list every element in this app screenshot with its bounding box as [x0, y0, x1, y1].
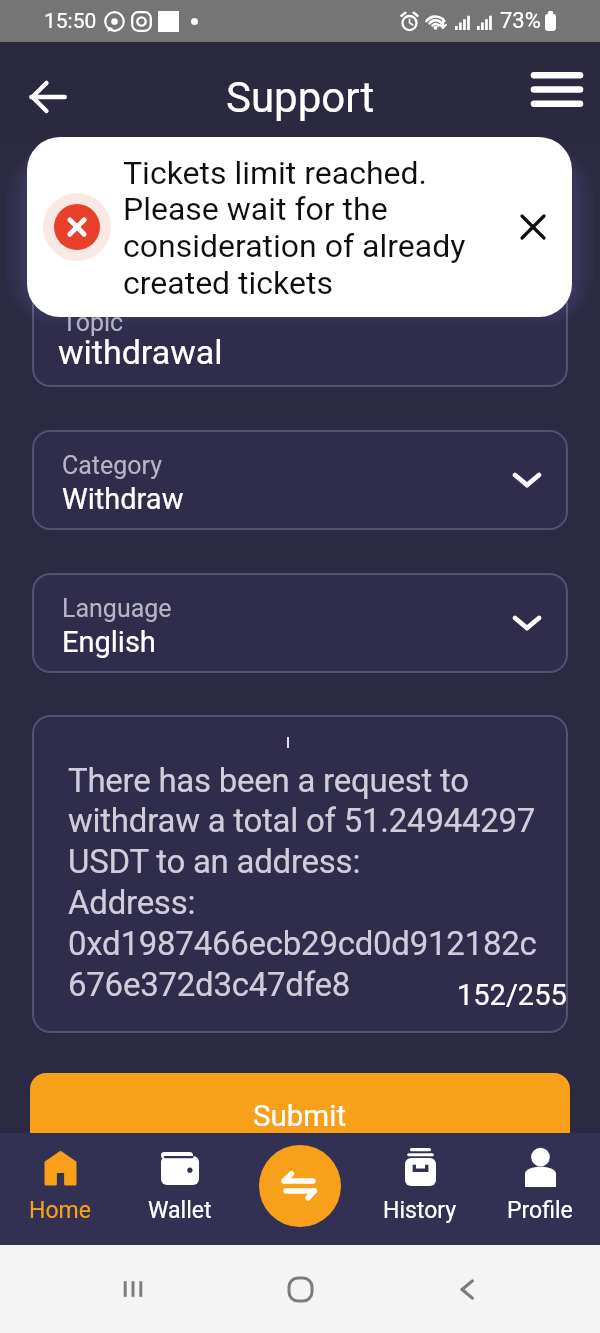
- button[interactable]: Language: [32, 573, 568, 673]
- button[interactable]: Wallet: [120, 1133, 240, 1245]
- button[interactable]: Tickets limit reached. Please wait for t…: [27, 137, 572, 317]
- button[interactable]: Topic: [32, 287, 568, 387]
- staticText: 73%: [500, 8, 541, 34]
- staticText: There has been a request to withdraw a t…: [68, 761, 537, 1004]
- staticText: Topic: [62, 308, 124, 337]
- staticText: Home: [29, 1197, 91, 1224]
- button[interactable]: Profile: [480, 1133, 600, 1245]
- staticText: Submit: [253, 1099, 347, 1134]
- button[interactable]: Menu: [523, 55, 591, 123]
- staticText: Wallet: [148, 1197, 212, 1224]
- button[interactable]: There has been a request to withdraw a t…: [32, 715, 568, 1033]
- staticText: English: [62, 625, 156, 659]
- button[interactable]: Submit: [30, 1073, 570, 1159]
- staticText: Withdraw: [62, 482, 184, 516]
- staticText: Category: [62, 451, 163, 480]
- staticText: withdrawal: [58, 332, 223, 372]
- button[interactable]: Home: [270, 1259, 330, 1319]
- button[interactable]: Home: [0, 1133, 120, 1245]
- button[interactable]: History: [360, 1133, 480, 1245]
- button[interactable]: Exchange: [259, 1145, 341, 1227]
- staticText: Tickets limit reached. Please wait for t…: [123, 154, 466, 302]
- staticText: 15:50: [44, 9, 97, 34]
- button[interactable]: Back: [437, 1245, 497, 1333]
- staticText: Support: [226, 73, 375, 122]
- button[interactable]: Category: [32, 430, 568, 530]
- button[interactable]: Recents: [103, 1245, 163, 1333]
- button[interactable]: Back: [14, 63, 82, 131]
- staticText: History: [383, 1197, 457, 1224]
- staticText: Language: [62, 594, 172, 623]
- staticText: 152/255: [457, 978, 567, 1012]
- staticText: Profile: [507, 1197, 573, 1224]
- button[interactable]: Close: [505, 199, 561, 255]
